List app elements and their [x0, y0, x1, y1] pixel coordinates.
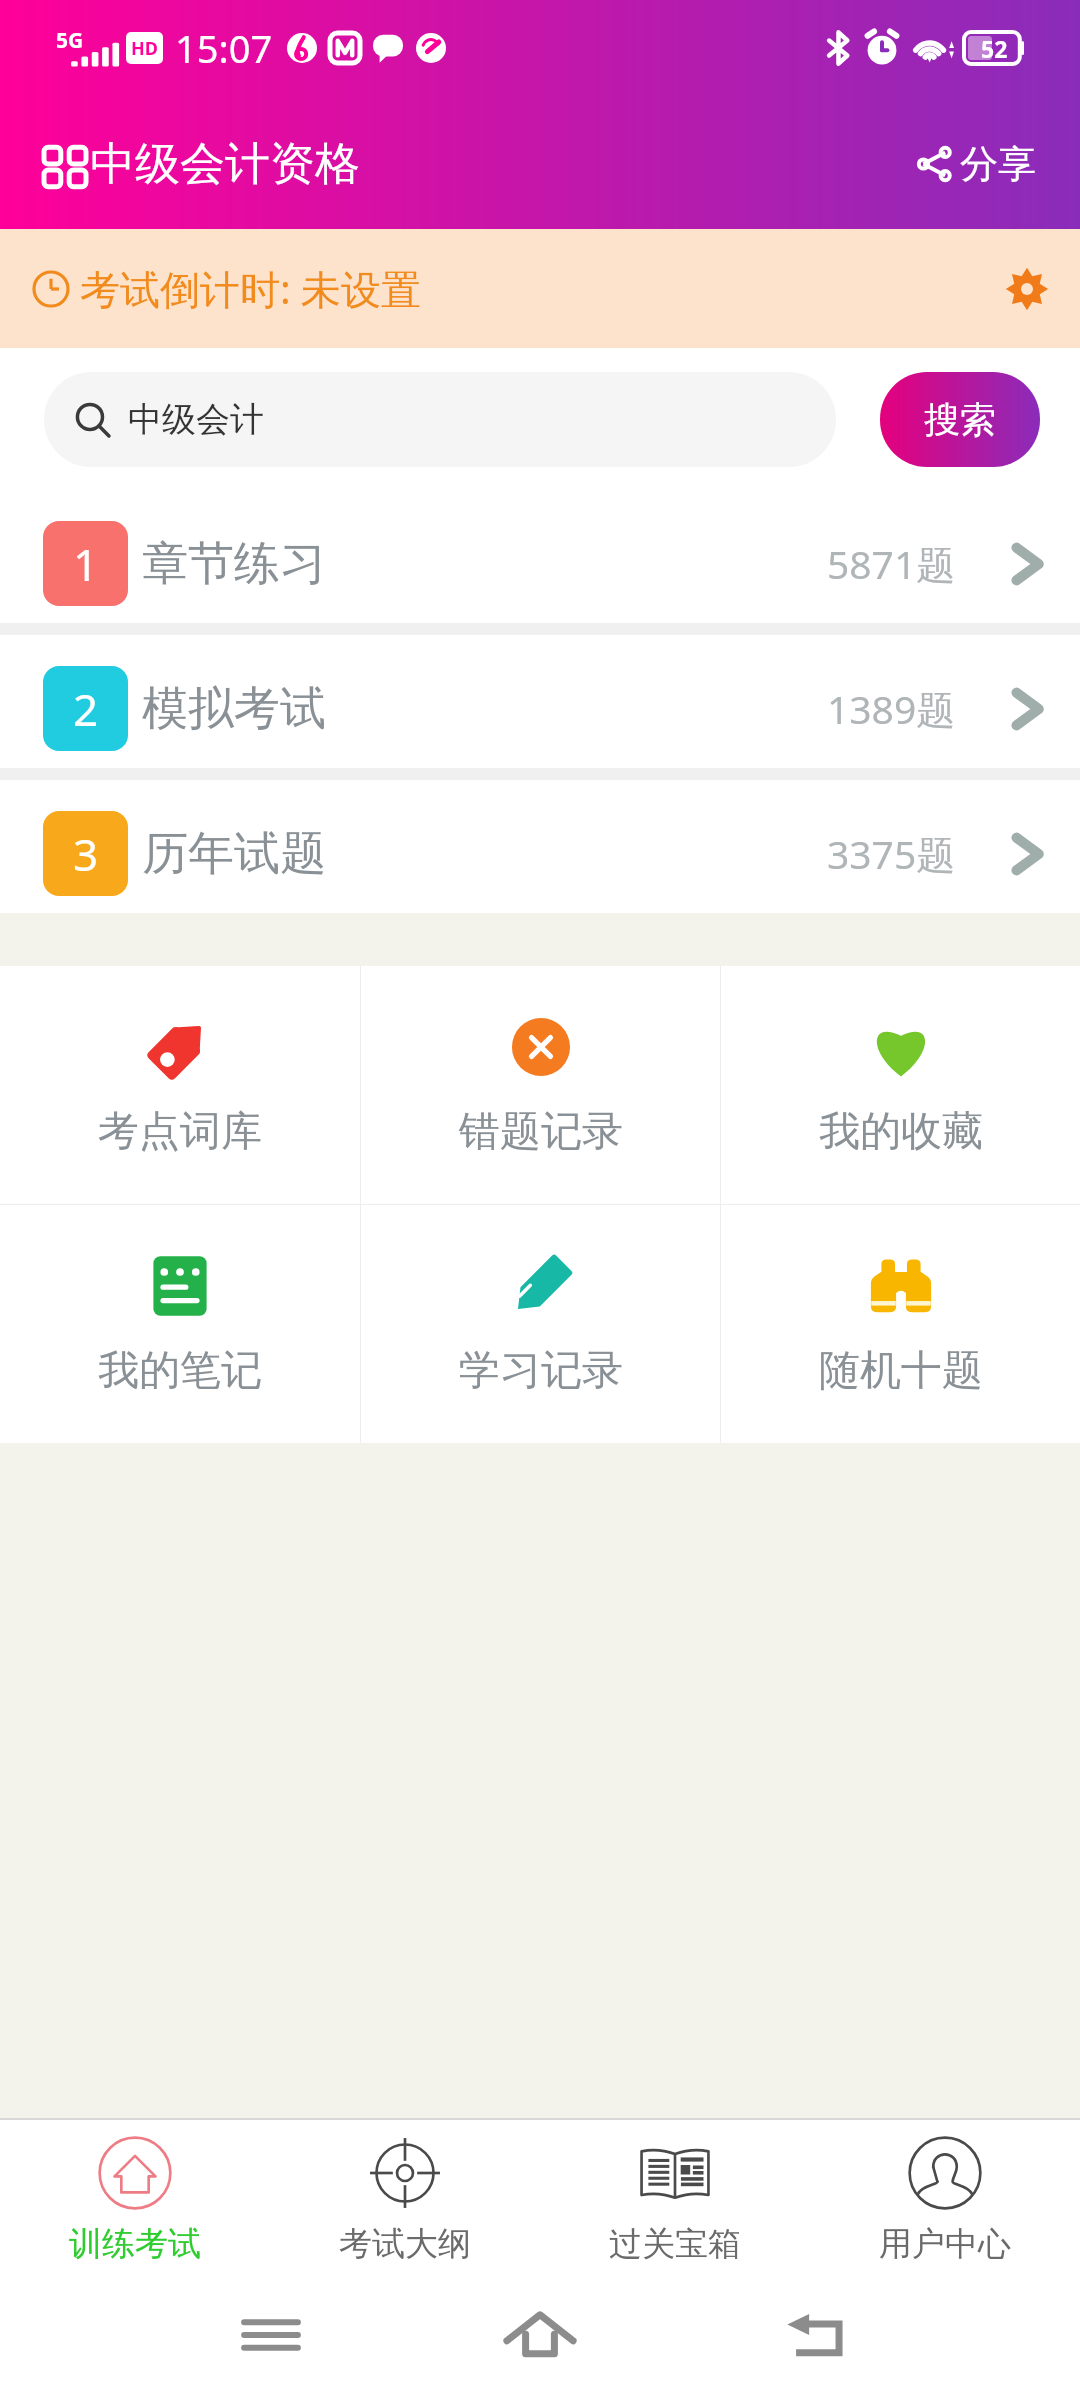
staticText: 我的笔记	[98, 1345, 262, 1397]
button[interactable]: 学习记录	[361, 1205, 720, 1443]
button[interactable]: 2	[0, 635, 1080, 768]
button[interactable]: 考点词库	[0, 966, 360, 1204]
staticText: 历年试题	[142, 825, 326, 883]
button[interactable]: 1	[0, 490, 1080, 623]
button[interactable]: 考试大纲	[270, 2120, 540, 2270]
staticText: 3	[73, 824, 99, 884]
staticText: 学习记录	[459, 1345, 623, 1397]
staticText: 15:07	[175, 22, 273, 74]
button[interactable]: 错题记录	[361, 966, 720, 1204]
button[interactable]: 过关宝箱	[540, 2120, 810, 2270]
button[interactable]: Back	[786, 2301, 854, 2369]
staticText: 训练考试	[69, 2223, 201, 2265]
staticText: 用户中心	[879, 2223, 1011, 2265]
button[interactable]: 搜索	[880, 372, 1040, 467]
staticText: 中级会计	[128, 398, 264, 441]
staticText: 1	[73, 534, 99, 594]
staticText: 错题记录	[459, 1106, 623, 1158]
staticText: 章节练习	[142, 535, 326, 593]
button[interactable]: 我的收藏	[721, 966, 1080, 1204]
staticText: 中级会计资格	[90, 136, 360, 193]
staticText: 模拟考试	[142, 680, 326, 738]
button[interactable]: Settings	[1004, 266, 1050, 312]
staticText: 3375题	[827, 827, 956, 880]
staticText: 考试倒计时: 未设置	[80, 261, 422, 316]
button[interactable]: 分享	[918, 134, 1036, 194]
button[interactable]: 3	[0, 780, 1080, 913]
staticText: 我的收藏	[819, 1106, 983, 1158]
button[interactable]: 中级会计	[44, 372, 836, 467]
button[interactable]: 用户中心	[810, 2120, 1080, 2270]
staticText: 5G	[56, 26, 84, 55]
button[interactable]: Recent apps	[239, 2303, 303, 2367]
staticText: 搜索	[924, 397, 996, 442]
staticText: 52	[981, 33, 1008, 64]
button[interactable]: 随机十题	[721, 1205, 1080, 1443]
staticText: 过关宝箱	[609, 2223, 741, 2265]
button[interactable]: Home	[504, 2299, 576, 2371]
button[interactable]: 我的笔记	[0, 1205, 360, 1443]
staticText: 考点词库	[98, 1106, 262, 1158]
staticText: 考试大纲	[339, 2223, 471, 2265]
button[interactable]: 训练考试	[0, 2120, 270, 2270]
staticText: 2	[73, 679, 99, 739]
staticText: 5871题	[827, 537, 956, 590]
staticText: HD	[131, 36, 158, 61]
staticText: 1389题	[827, 682, 956, 735]
staticText: 随机十题	[819, 1345, 983, 1397]
staticText: 分享	[960, 140, 1036, 188]
